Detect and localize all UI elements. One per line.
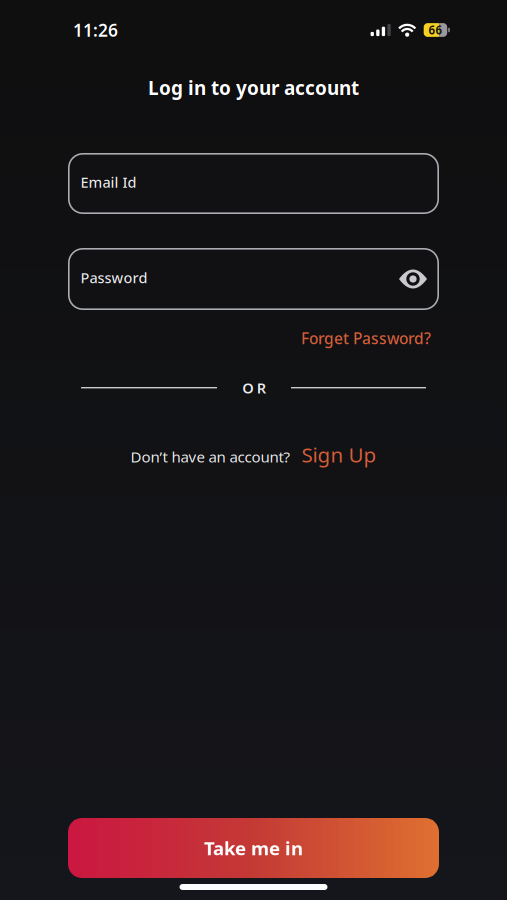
button[interactable]: Take me in — [68, 818, 439, 878]
staticText: Forget Password? — [301, 328, 431, 348]
button[interactable]: Email Id — [68, 153, 439, 214]
button[interactable]: Forget Password? — [301, 328, 431, 348]
staticText: 66 — [428, 22, 442, 38]
staticText: Password — [80, 268, 147, 287]
staticText: Log in to your account — [148, 75, 359, 100]
staticText: 11:26 — [73, 18, 118, 41]
staticText: Don’t have an account? — [130, 447, 290, 467]
button[interactable]: Sign Up — [301, 441, 376, 468]
button[interactable]: Show password — [399, 269, 439, 288]
staticText: OR — [242, 378, 266, 397]
staticText: Sign Up — [301, 441, 376, 468]
staticText: Email Id — [80, 172, 136, 192]
staticText: Take me in — [204, 836, 303, 860]
button[interactable]: Password — [68, 248, 439, 310]
